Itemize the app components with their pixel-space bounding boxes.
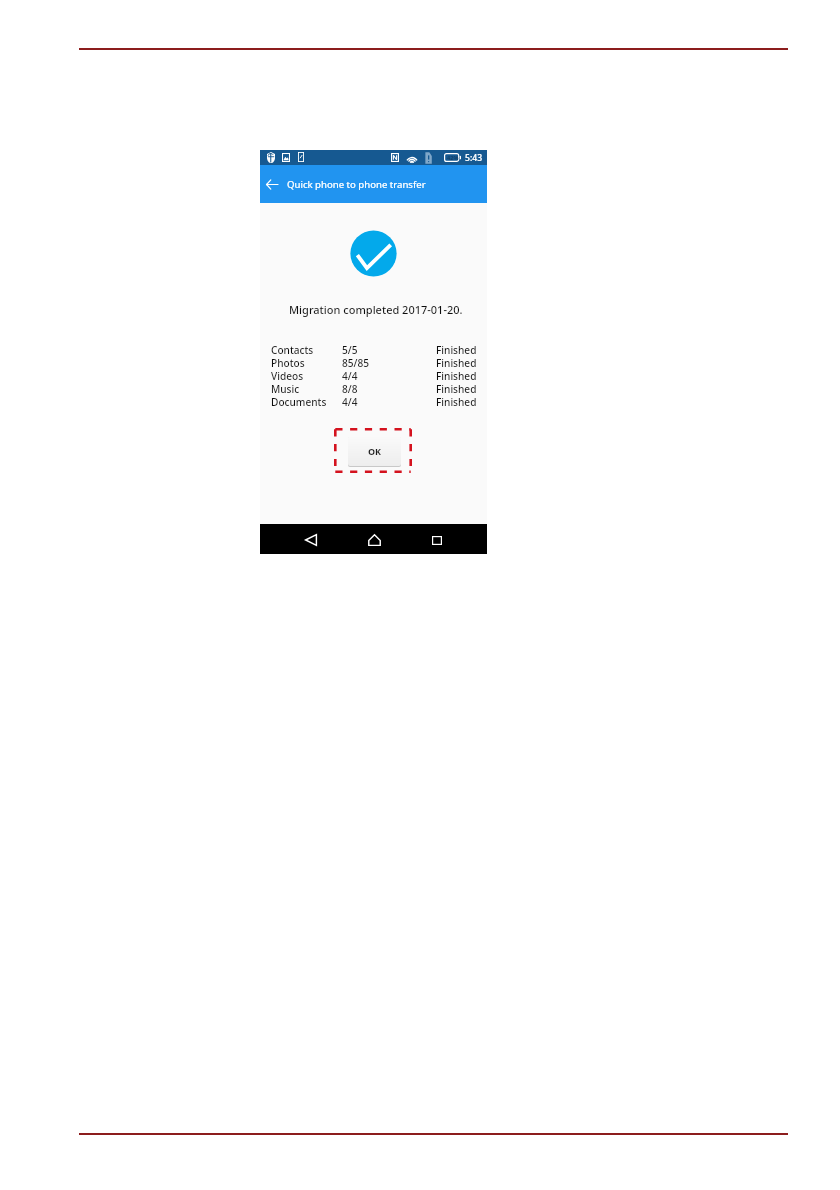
staticText: 85/85 bbox=[342, 356, 369, 369]
staticText: Migration completed 2017-01-20. bbox=[289, 302, 463, 317]
staticText: Contacts bbox=[271, 343, 314, 356]
staticText: Quick phone to phone transfer bbox=[287, 178, 426, 191]
button[interactable]: Back bbox=[301, 530, 321, 550]
staticText: 8/8 bbox=[342, 382, 358, 395]
staticText: Finished bbox=[436, 369, 477, 382]
staticText: Finished bbox=[436, 382, 477, 395]
staticText: Finished bbox=[436, 395, 477, 408]
staticText: Finished bbox=[436, 356, 477, 369]
staticText: Documents bbox=[271, 395, 327, 408]
staticText: Videos bbox=[271, 369, 304, 382]
button[interactable]: Home bbox=[364, 530, 384, 550]
staticText: 5/5 bbox=[342, 343, 358, 356]
button[interactable]: Back bbox=[262, 174, 281, 195]
staticText: 5:43 bbox=[465, 152, 483, 164]
staticText: 42% bbox=[447, 154, 459, 162]
button[interactable]: OK bbox=[348, 436, 401, 466]
staticText: Finished bbox=[436, 343, 477, 356]
staticText: Photos bbox=[271, 356, 305, 369]
staticText: OK bbox=[368, 445, 382, 457]
button[interactable]: Recent apps bbox=[427, 530, 447, 550]
staticText: 4/4 bbox=[342, 395, 358, 408]
staticText: 4/4 bbox=[342, 369, 358, 382]
staticText: Music bbox=[271, 382, 300, 395]
